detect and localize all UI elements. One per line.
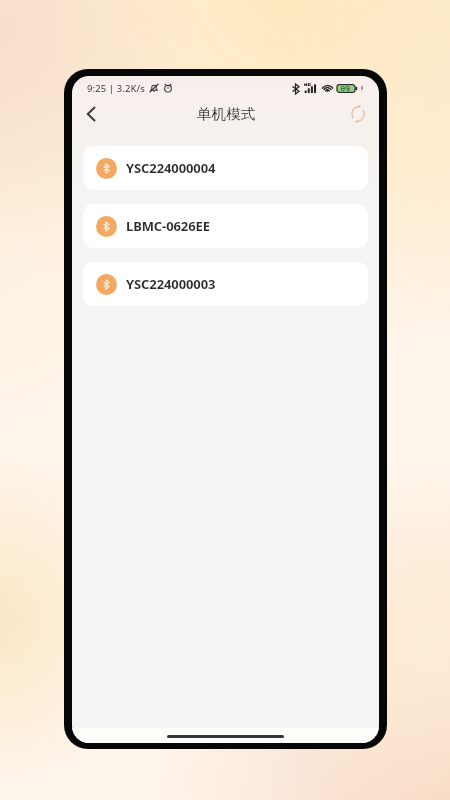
- staticText: LBMC-0626EE: [126, 217, 210, 235]
- staticText: YSC224000004: [126, 159, 216, 177]
- button[interactable]: YSC224000003: [83, 262, 368, 306]
- staticText: YSC224000003: [126, 275, 216, 293]
- button[interactable]: Refresh: [344, 100, 372, 128]
- staticText: 单机模式: [197, 105, 255, 123]
- button[interactable]: YSC224000004: [83, 146, 368, 190]
- staticText: 9:25 | 3.2K/s: [87, 82, 146, 95]
- button[interactable]: LBMC-0626EE: [83, 204, 368, 248]
- button[interactable]: Back: [76, 99, 106, 129]
